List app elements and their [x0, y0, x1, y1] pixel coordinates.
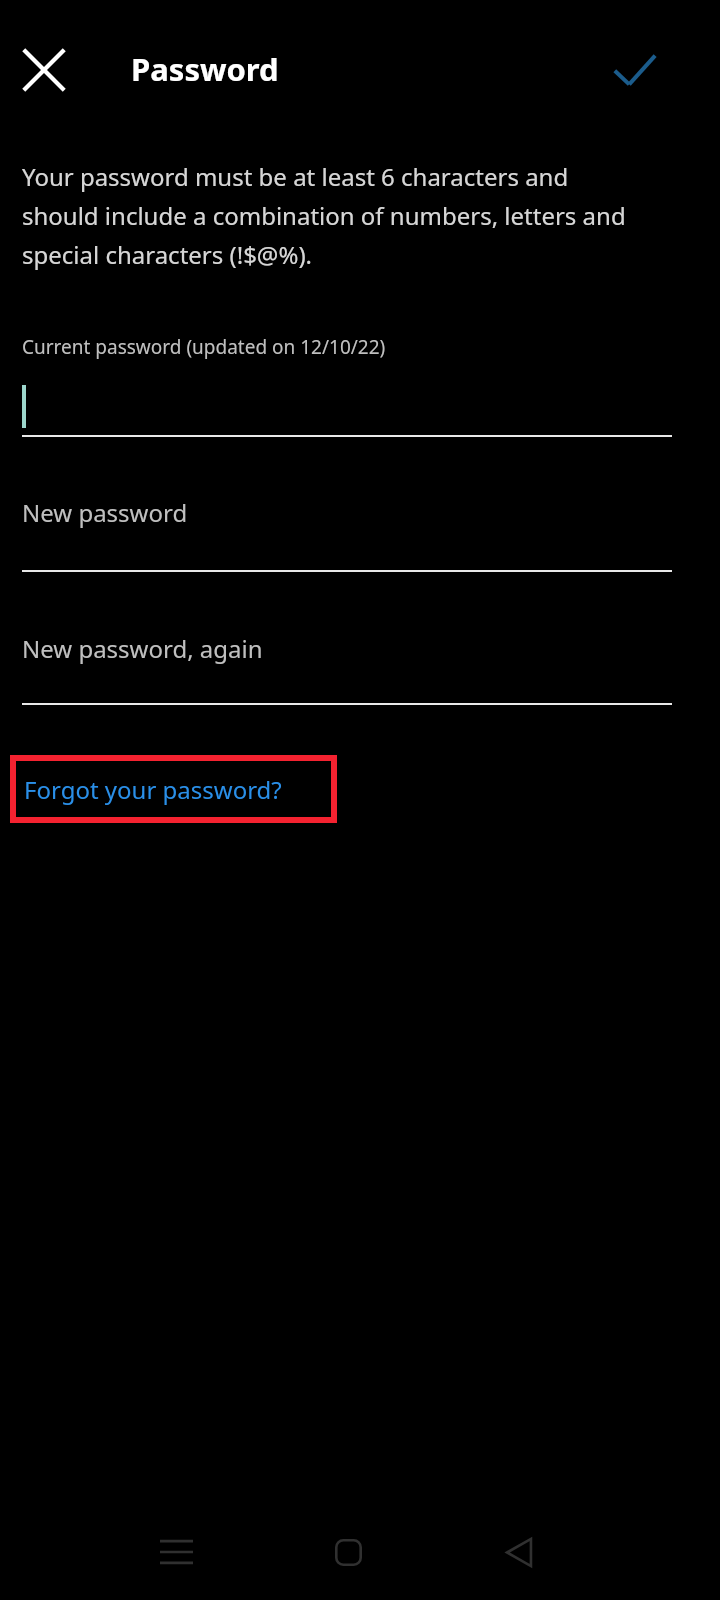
button[interactable]: New password, again — [22, 626, 672, 705]
staticText: Current password (updated on 12/10/22) — [22, 334, 386, 360]
staticText: Password — [131, 48, 279, 90]
button[interactable]: Close — [8, 36, 80, 104]
staticText: Your password must be at least 6 charact… — [22, 160, 642, 271]
button[interactable]: New password — [22, 490, 672, 572]
staticText: New password — [22, 496, 188, 529]
button[interactable]: Forgot your password? — [10, 755, 337, 823]
button[interactable]: Confirm — [596, 34, 672, 106]
button[interactable]: Back — [479, 1526, 559, 1578]
button[interactable] — [22, 372, 672, 437]
button[interactable]: Home — [308, 1526, 388, 1578]
staticText: New password, again — [22, 632, 263, 665]
staticText: Forgot your password? — [24, 773, 282, 806]
button[interactable]: Recent apps — [136, 1526, 216, 1578]
